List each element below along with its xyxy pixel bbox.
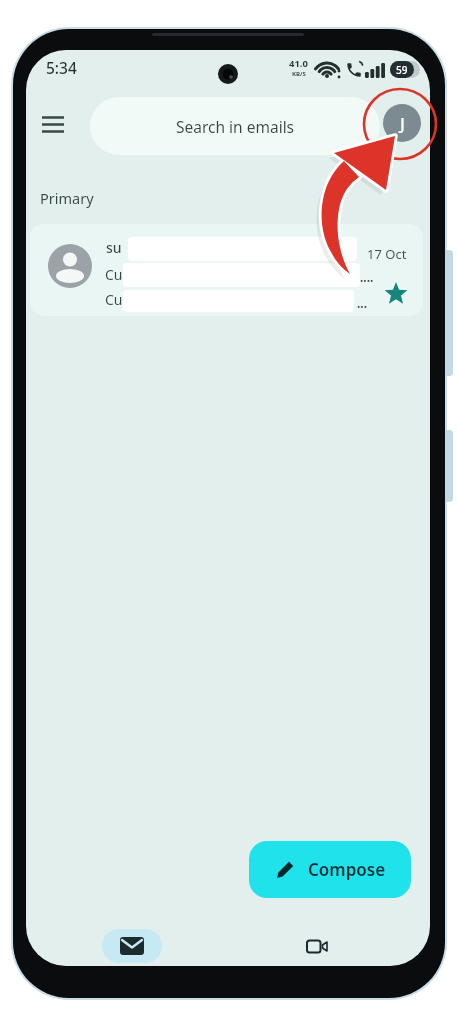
staticText: J <box>400 112 405 135</box>
staticText: 5:34 <box>46 57 77 78</box>
staticText: Compose <box>308 858 386 881</box>
button[interactable]: Compose <box>249 841 411 898</box>
staticText: Primary <box>40 188 94 208</box>
staticText: Cu <box>105 265 123 284</box>
button[interactable]: J <box>383 104 421 142</box>
staticText: KB/S <box>292 70 306 78</box>
staticText: su <box>106 238 122 257</box>
button[interactable] <box>34 108 78 146</box>
button[interactable] <box>291 929 343 963</box>
staticText: Cu <box>105 290 123 309</box>
staticText: .... <box>360 269 374 285</box>
button[interactable]: Search in emails <box>90 97 380 155</box>
staticText: 17 Oct <box>367 245 407 263</box>
button[interactable] <box>102 929 162 963</box>
staticText: Search in emails <box>176 116 295 137</box>
staticText: 59 <box>396 63 408 77</box>
button[interactable]: su <box>30 224 423 316</box>
staticText: 41.0 <box>289 57 308 70</box>
staticText: ... <box>357 295 368 311</box>
